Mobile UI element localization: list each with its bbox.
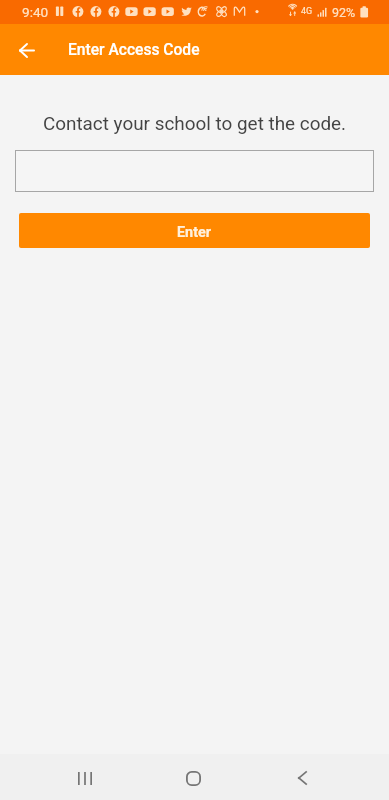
button[interactable]: Recent apps [61, 755, 109, 800]
button[interactable] [15, 150, 374, 192]
staticText: Enter Access Code [68, 41, 200, 59]
staticText: 4G [301, 6, 313, 17]
button[interactable]: Back [278, 755, 326, 800]
button[interactable]: Enter [19, 213, 370, 248]
staticText: 9:40 [22, 4, 49, 20]
staticText: Enter [177, 224, 212, 241]
staticText: Contact your school to get the code. [0, 112, 389, 134]
button[interactable]: Home [169, 755, 217, 800]
button[interactable]: Back [12, 35, 42, 65]
staticText: 92% [332, 5, 356, 20]
